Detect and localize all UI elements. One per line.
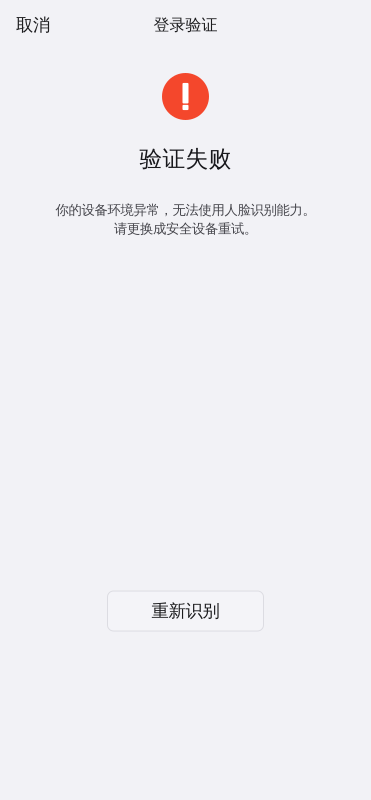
staticText: 验证失败 (139, 145, 231, 173)
staticText: 重新识别 (151, 600, 219, 622)
staticText: 登录验证 (153, 15, 217, 35)
staticText: 取消 (16, 14, 50, 36)
staticText: 请更换成安全设备重试。 (114, 221, 257, 237)
staticText: 你的设备环境异常，无法使用人脸识别能力。 (55, 202, 315, 218)
button[interactable]: 重新识别 (107, 591, 263, 631)
button[interactable]: 取消 (11, 5, 55, 45)
